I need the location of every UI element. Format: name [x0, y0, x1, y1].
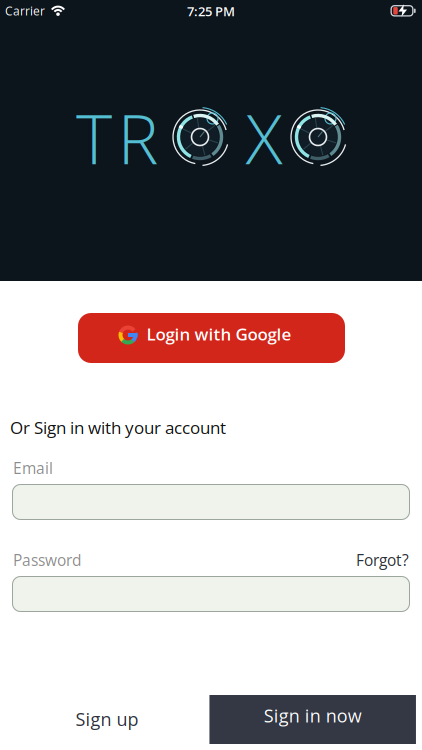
staticText: R: [117, 90, 158, 184]
staticText: Carrier: [5, 3, 45, 19]
button[interactable]: Password: [12, 576, 410, 612]
staticText: X: [245, 90, 282, 184]
staticText: Password: [13, 549, 81, 570]
staticText: Login with Google: [146, 322, 291, 345]
button[interactable]: Sign in now: [209, 695, 416, 744]
staticText: Sign in now: [264, 703, 362, 728]
staticText: Or Sign in with your account: [10, 416, 226, 439]
staticText: 7:25 PM: [187, 2, 235, 20]
staticText: Sign up: [75, 707, 138, 731]
button[interactable]: Login with Google: [78, 313, 345, 363]
button[interactable]: Email: [12, 484, 410, 520]
button[interactable]: Forgot?: [356, 549, 409, 570]
staticText: Email: [13, 457, 53, 478]
staticText: T: [76, 90, 112, 184]
staticText: Forgot?: [356, 549, 409, 570]
button[interactable]: Sign up: [47, 695, 167, 743]
